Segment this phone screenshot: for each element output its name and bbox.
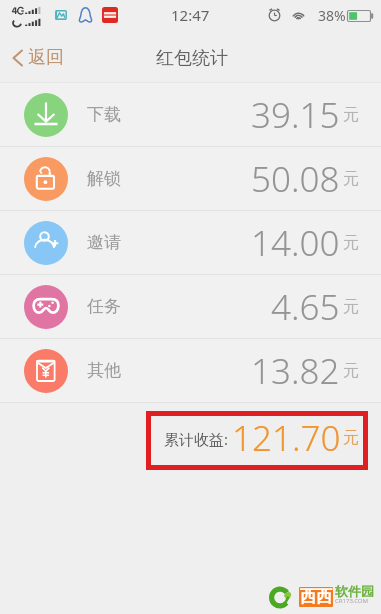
staticText: 软件园 xyxy=(335,583,374,599)
button[interactable]: 解锁 xyxy=(0,147,381,211)
staticText: 元 xyxy=(343,169,359,189)
staticText: 50.08 xyxy=(251,155,340,203)
button[interactable]: 其他 xyxy=(0,339,381,403)
staticText: 西西 xyxy=(300,587,332,607)
staticText: 累计收益: xyxy=(164,429,229,449)
staticText: 38% xyxy=(318,6,346,25)
staticText: 121.70 xyxy=(232,414,341,462)
staticText: 元 xyxy=(343,428,359,448)
staticText: 14.00 xyxy=(251,219,340,267)
staticText: 12:47 xyxy=(171,5,210,25)
staticText: 下载 xyxy=(87,104,121,125)
staticText: 红包统计 xyxy=(156,47,228,70)
staticText: 其他 xyxy=(87,360,121,381)
staticText: 4.65 xyxy=(271,283,340,331)
button[interactable]: 下载 xyxy=(0,83,381,147)
staticText: 返回 xyxy=(28,46,64,69)
button[interactable]: 返回 xyxy=(0,36,78,79)
button[interactable]: 邀请 xyxy=(0,211,381,275)
staticText: 元 xyxy=(343,105,359,125)
staticText: 邀请 xyxy=(87,232,121,253)
staticText: 13.82 xyxy=(251,347,340,395)
button[interactable]: 任务 xyxy=(0,275,381,339)
staticText: 39.15 xyxy=(251,91,340,139)
staticText: 元 xyxy=(343,233,359,253)
staticText: 任务 xyxy=(87,296,121,317)
staticText: 解锁 xyxy=(87,168,121,189)
staticText: 元 xyxy=(343,361,359,381)
staticText: CR173.COM xyxy=(335,597,368,605)
staticText: 元 xyxy=(343,297,359,317)
